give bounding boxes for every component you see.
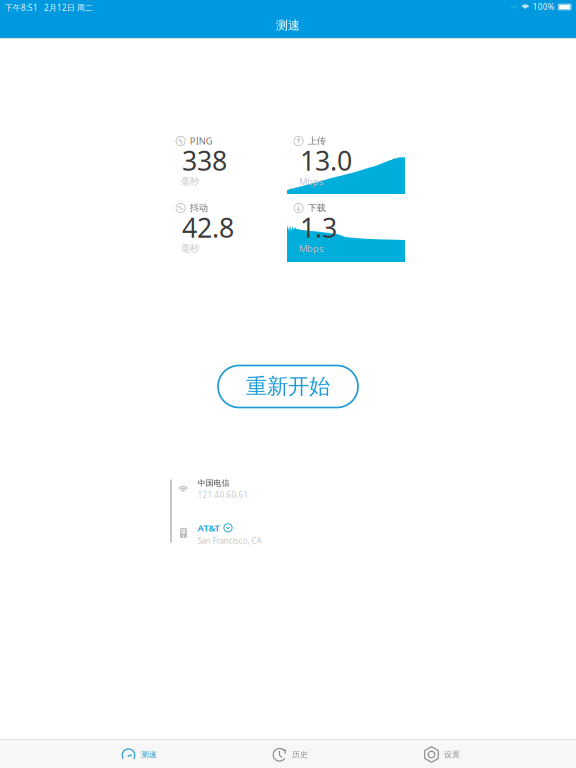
staticText: 13.0 — [300, 143, 352, 178]
staticText: San Francisco, CA — [197, 535, 261, 546]
staticText: 下载 — [308, 202, 326, 214]
button[interactable]: 设置 — [412, 740, 472, 768]
staticText: 上传 — [308, 135, 326, 147]
staticText: 历史 — [292, 750, 308, 759]
staticText: PING — [190, 135, 213, 147]
staticText: Mbps — [299, 242, 323, 255]
staticText: Mbps — [299, 175, 323, 188]
button[interactable]: 历史 — [260, 740, 320, 768]
staticText: 测速 — [276, 18, 300, 32]
staticText: 设置 — [444, 750, 460, 759]
staticText: ···· — [510, 3, 518, 11]
staticText: 42.8 — [182, 210, 234, 245]
staticText: 重新开始 — [246, 373, 330, 400]
staticText: AT&T — [197, 522, 219, 534]
staticText: 中国电信 — [197, 478, 229, 488]
staticText: 1.3 — [300, 210, 337, 245]
staticText: 测速 — [141, 750, 157, 759]
staticText: 下午8:51 2月12日 周二 — [5, 2, 93, 13]
button[interactable]: 重新开始 — [218, 365, 358, 407]
button[interactable]: 测速 — [109, 740, 169, 768]
staticText: 338 — [182, 143, 227, 178]
button[interactable]: AT&T — [0, 39, 576, 739]
staticText: 121.40.60.61 — [197, 489, 248, 500]
staticText: 抖动 — [190, 202, 208, 214]
staticText: 毫秒 — [181, 243, 199, 254]
staticText: 100% — [533, 2, 555, 12]
staticText: 毫秒 — [181, 176, 199, 187]
